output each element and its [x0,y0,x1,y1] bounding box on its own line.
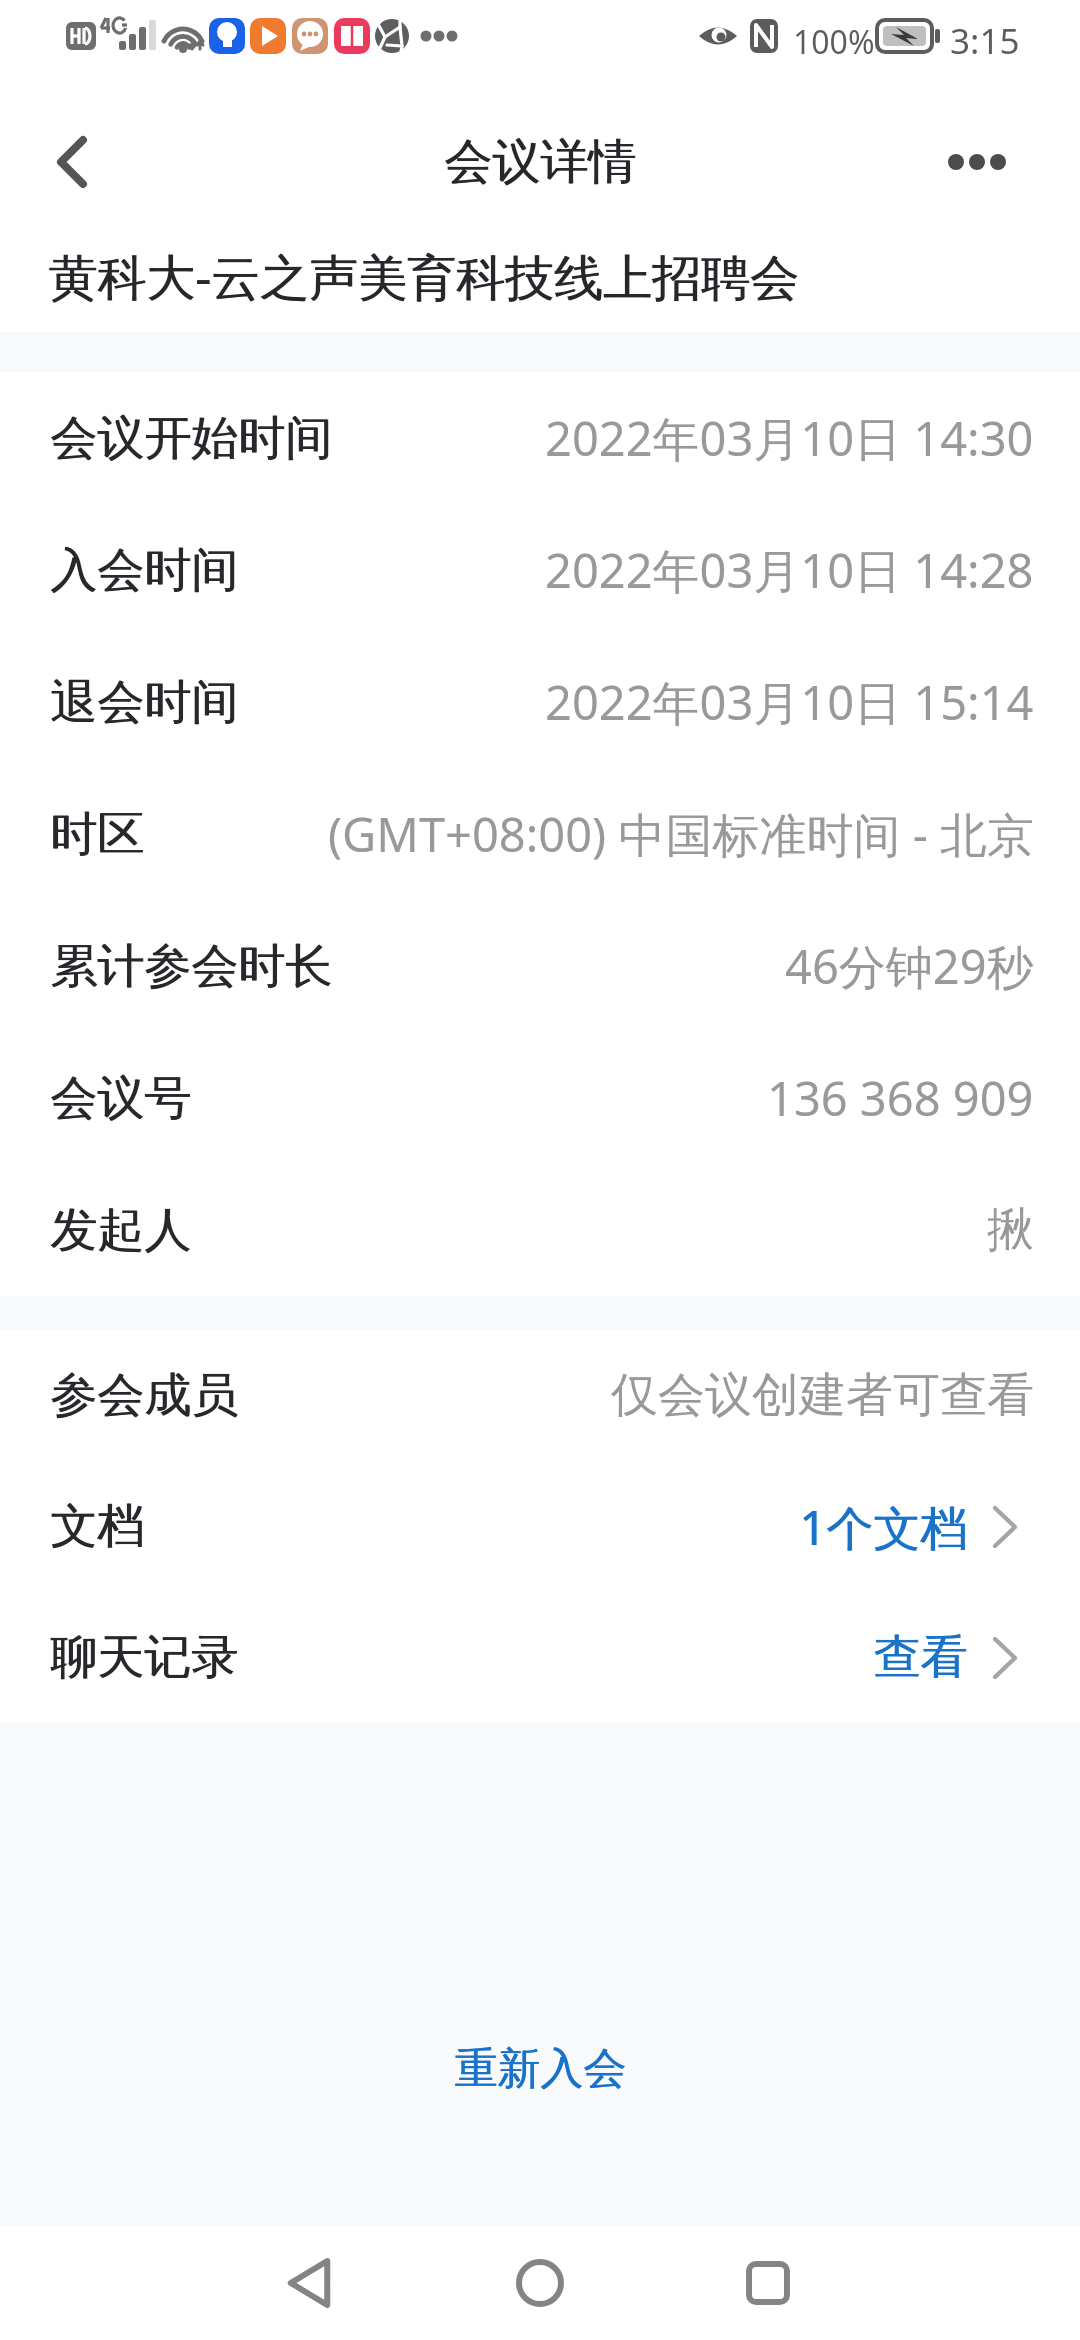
staticText: 2022年03月10日 14:30 [545,406,1034,470]
button[interactable]: 时区 [0,768,1080,900]
staticText: 查看 [874,1628,968,1687]
staticText: 1个文档 [800,1495,968,1559]
staticText: 2022年03月10日 15:14 [545,670,1034,734]
staticText: 仅会议创建者可查看 [611,1366,1034,1425]
staticText: (GMT+08:00) 中国标准时间 - 北京 [328,802,1034,866]
staticText: 时区 [50,805,144,864]
staticText: 黄科大-云之声美育科技线上招聘会 [48,243,799,310]
button[interactable]: 聊天记录 [0,1592,1080,1723]
staticText: 黄科大-云之声美育科技线上招聘会 [49,243,800,310]
staticText: 会议详情 [444,132,636,192]
staticText: 发起人 [50,1201,191,1260]
staticText: 聊天记录 [51,1628,239,1687]
staticText: 文档 [51,1497,145,1556]
staticText: 3:15 [950,17,1020,65]
button[interactable]: 参会成员 [0,1330,1080,1461]
staticText: 时区 [51,805,145,864]
button[interactable]: Home [480,2226,600,2340]
staticText: 重新入会 [455,2042,627,2096]
staticText: 100% [793,20,875,64]
staticText: 136 368 909 [767,1066,1034,1130]
button[interactable]: 退会时间 [0,636,1080,768]
staticText: 1个文档 [799,1495,967,1559]
button[interactable]: 文档 [0,1461,1080,1592]
button[interactable]: Back [0,87,150,237]
button[interactable]: 重新入会 [394,2022,686,2116]
staticText: 发起人 [51,1201,192,1260]
staticText: 参会成员 [50,1366,238,1425]
staticText: 累计参会时长 [51,937,333,996]
staticText: 文档 [50,1497,144,1556]
staticText: 会议开始时间 [50,409,332,468]
staticText: 46分钟29秒 [785,934,1034,998]
button[interactable]: 会议开始时间 [0,372,1080,504]
staticText: 查看 [873,1628,967,1687]
staticText: 会议详情 [445,132,637,192]
button[interactable]: Back [249,2226,369,2340]
button[interactable]: Recents [708,2226,828,2340]
staticText: 聊天记录 [50,1628,238,1687]
staticText: 入会时间 [51,541,239,600]
staticText: 会议号 [51,1069,192,1128]
staticText: 退会时间 [51,673,239,732]
staticText: 参会成员 [51,1366,239,1425]
button[interactable]: 发起人 [0,1164,1080,1296]
button[interactable]: 入会时间 [0,504,1080,636]
staticText: 2022年03月10日 14:28 [545,538,1034,602]
button[interactable]: More options [930,87,1080,237]
button[interactable]: 会议号 [0,1032,1080,1164]
staticText: 会议号 [50,1069,191,1128]
staticText: 重新入会 [454,2042,626,2096]
staticText: 累计参会时长 [50,937,332,996]
button[interactable]: 累计参会时长 [0,900,1080,1032]
staticText: 退会时间 [50,673,238,732]
staticText: 会议开始时间 [51,409,333,468]
staticText: 入会时间 [50,541,238,600]
staticText: 揪 [987,1201,1034,1260]
